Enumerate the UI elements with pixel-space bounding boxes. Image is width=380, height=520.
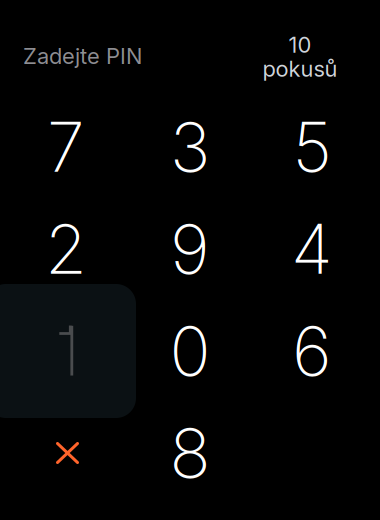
staticText: 2	[45, 208, 87, 290]
button[interactable]: 9	[128, 198, 252, 300]
staticText: pokusů	[262, 56, 337, 82]
button[interactable]: Delete	[5, 402, 129, 504]
button[interactable]: 2	[4, 198, 128, 300]
button[interactable]: 6	[250, 300, 374, 402]
staticText: 3	[170, 106, 210, 188]
staticText: 5	[292, 106, 331, 188]
staticText: 7	[47, 106, 85, 188]
staticText: Zadejte PIN	[23, 43, 142, 69]
staticText: 8	[169, 412, 210, 494]
button[interactable]: 3	[128, 96, 252, 198]
staticText: 6	[292, 310, 332, 392]
button[interactable]: 7	[4, 96, 128, 198]
button[interactable]: 0	[128, 300, 252, 402]
staticText: 4	[291, 208, 333, 290]
staticText: 0	[169, 310, 210, 392]
staticText: 9	[170, 208, 210, 290]
button[interactable]: 1	[4, 299, 128, 401]
staticText: 10	[288, 31, 311, 58]
button[interactable]: 8	[128, 402, 252, 504]
button[interactable]: 4	[250, 198, 374, 300]
button[interactable]: 5	[250, 96, 374, 198]
